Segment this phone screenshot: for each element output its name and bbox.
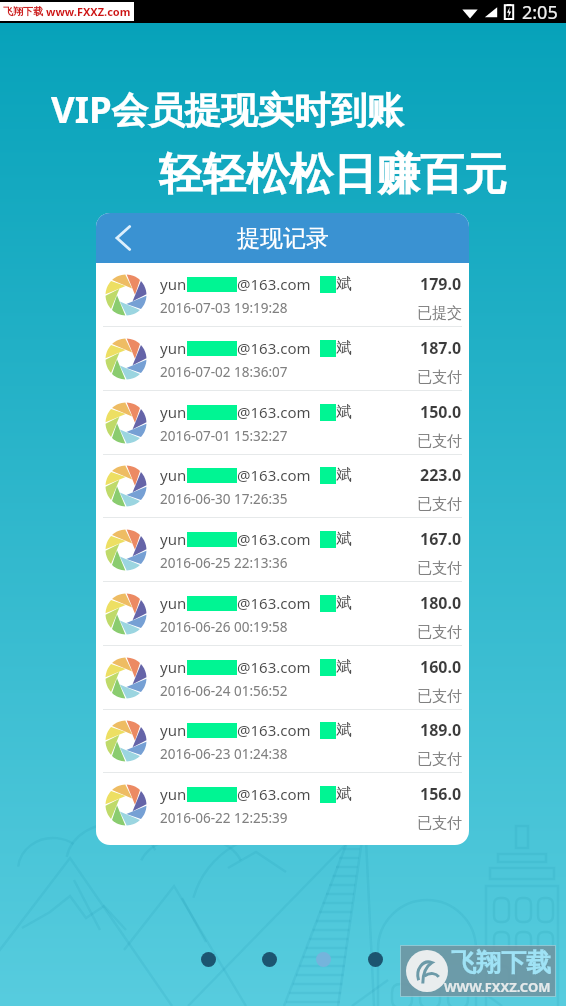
button[interactable]: Page 2: [262, 952, 277, 967]
staticText: 2:05: [522, 0, 558, 23]
staticText: 已支付: [417, 559, 462, 578]
staticText: 223.0: [420, 464, 462, 486]
staticText: 2016-07-01 15:32:27: [160, 427, 288, 445]
staticText: 167.0: [420, 528, 462, 550]
staticText: 飞翔下载: [451, 947, 551, 978]
staticText: VIP会员提现实时到账: [51, 84, 404, 134]
staticText: 斌: [336, 720, 352, 740]
button[interactable]: Page 1: [201, 952, 216, 967]
staticText: 轻轻松松日赚百元: [159, 147, 507, 202]
staticText: 2016-07-03 19:19:28: [160, 299, 288, 317]
staticText: @163.com: [237, 657, 311, 677]
button[interactable]: yun: [96, 263, 469, 327]
staticText: yun: [160, 593, 187, 613]
staticText: 斌: [336, 529, 352, 549]
staticText: 180.0: [420, 592, 462, 614]
staticText: 2016-06-24 01:56:52: [160, 682, 288, 700]
staticText: 提现记录: [237, 224, 329, 253]
staticText: yun: [160, 529, 187, 549]
staticText: 斌: [336, 338, 352, 358]
staticText: 已支付: [417, 814, 462, 833]
staticText: yun: [160, 274, 187, 294]
staticText: 已支付: [417, 432, 462, 451]
staticText: 斌: [336, 402, 352, 422]
staticText: @163.com: [237, 593, 311, 613]
staticText: 已提交: [417, 304, 462, 323]
staticText: 2016-06-22 12:25:39: [160, 809, 288, 827]
staticText: 已支付: [417, 368, 462, 387]
staticText: 187.0: [420, 337, 462, 359]
button[interactable]: yun: [96, 391, 469, 455]
button[interactable]: Page 4: [368, 952, 383, 967]
button[interactable]: Back: [96, 213, 146, 263]
staticText: yun: [160, 657, 187, 677]
button[interactable]: yun: [96, 646, 469, 710]
staticText: 2016-06-26 00:19:58: [160, 618, 288, 636]
button[interactable]: yun: [96, 454, 469, 518]
staticText: 156.0: [420, 783, 462, 805]
staticText: yun: [160, 338, 187, 358]
staticText: 2016-06-25 22:13:36: [160, 554, 288, 572]
button[interactable]: yun: [96, 709, 469, 773]
staticText: @163.com: [237, 402, 311, 422]
button[interactable]: yun: [96, 327, 469, 391]
staticText: @163.com: [237, 784, 311, 804]
staticText: 已支付: [417, 495, 462, 514]
staticText: WWW.FXXZ.COM: [444, 978, 551, 996]
button[interactable]: yun: [96, 773, 469, 837]
staticText: 189.0: [420, 719, 462, 741]
staticText: yun: [160, 465, 187, 485]
staticText: 160.0: [420, 656, 462, 678]
staticText: @163.com: [237, 529, 311, 549]
staticText: @163.com: [237, 338, 311, 358]
staticText: 已支付: [417, 687, 462, 706]
staticText: www.FXXZ.com: [46, 4, 131, 19]
button[interactable]: Page 3: [316, 952, 331, 967]
staticText: 斌: [336, 274, 352, 294]
staticText: yun: [160, 402, 187, 422]
staticText: 150.0: [420, 401, 462, 423]
staticText: @163.com: [237, 274, 311, 294]
staticText: 2016-06-23 01:24:38: [160, 745, 288, 763]
staticText: 斌: [336, 657, 352, 677]
staticText: @163.com: [237, 720, 311, 740]
staticText: 斌: [336, 593, 352, 613]
staticText: 斌: [336, 784, 352, 804]
staticText: 已支付: [417, 623, 462, 642]
staticText: yun: [160, 784, 187, 804]
button[interactable]: yun: [96, 518, 469, 582]
staticText: 斌: [336, 465, 352, 485]
staticText: 179.0: [420, 273, 462, 295]
staticText: 飞翔下载: [3, 5, 43, 18]
staticText: 2016-07-02 18:36:07: [160, 363, 288, 381]
staticText: 已支付: [417, 750, 462, 769]
staticText: @163.com: [237, 465, 311, 485]
staticText: yun: [160, 720, 187, 740]
button[interactable]: yun: [96, 582, 469, 646]
staticText: 2016-06-30 17:26:35: [160, 490, 288, 508]
